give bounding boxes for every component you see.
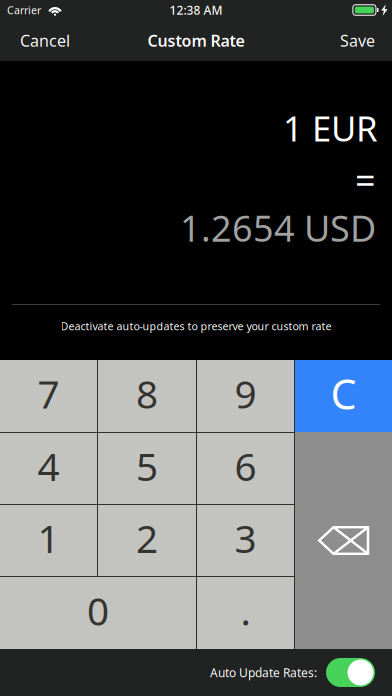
button[interactable]: 4 — [0, 433, 97, 504]
button[interactable]: 3 — [197, 505, 294, 576]
button[interactable]: 5 — [98, 433, 196, 504]
button[interactable]: 9 — [197, 360, 294, 432]
staticText: 12:38 AM — [169, 2, 222, 18]
staticText: . — [240, 585, 250, 636]
button[interactable]: Cancel — [0, 20, 84, 61]
button[interactable]: 6 — [197, 433, 294, 504]
staticText: 6 — [234, 440, 256, 492]
button[interactable]: Auto Update Rates — [326, 658, 375, 687]
staticText: 3 — [234, 512, 256, 564]
staticText: Carrier — [7, 3, 41, 17]
button[interactable]: . — [197, 577, 294, 649]
button[interactable]: 1 — [0, 505, 97, 576]
staticText: 1 EUR — [283, 105, 378, 151]
button[interactable]: Delete — [295, 432, 392, 649]
staticText: 0 — [87, 585, 109, 636]
staticText: C — [330, 366, 356, 421]
staticText: 2 — [136, 512, 158, 564]
staticText: = — [355, 156, 376, 204]
staticText: Save — [340, 30, 375, 51]
button[interactable]: 0 — [0, 577, 196, 649]
button[interactable]: C — [295, 360, 392, 432]
staticText: 7 — [37, 368, 59, 419]
staticText: Cancel — [20, 30, 70, 51]
button[interactable]: 7 — [0, 360, 97, 432]
staticText: Custom Rate — [147, 30, 244, 51]
staticText: Deactivate auto-updates to preserve your… — [60, 319, 331, 333]
staticText: 4 — [37, 440, 59, 492]
button[interactable]: 8 — [98, 360, 196, 432]
button[interactable]: 2 — [98, 505, 196, 576]
staticText: 8 — [136, 368, 158, 419]
staticText: 1 — [37, 512, 59, 564]
staticText: 1.2654 USD — [180, 204, 376, 252]
staticText: Auto Update Rates: — [210, 664, 317, 680]
button[interactable]: Save — [323, 20, 392, 61]
staticText: 5 — [136, 440, 158, 492]
staticText: 9 — [234, 368, 256, 419]
